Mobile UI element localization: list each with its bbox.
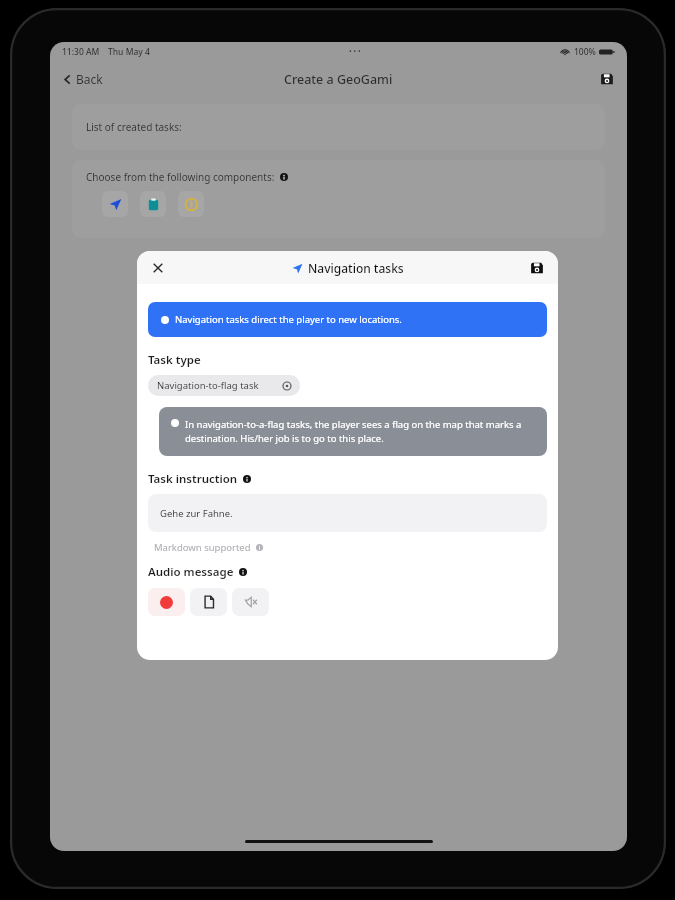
staticText: Choose from the following components: <box>86 170 275 184</box>
staticText: Back <box>76 71 103 87</box>
button[interactable]: Record <box>148 588 185 616</box>
staticText: Navigation-to-flag task <box>157 379 259 392</box>
button[interactable]: Navigation-to-flag task <box>148 375 300 396</box>
button[interactable]: Save <box>597 69 617 89</box>
staticText: 11:30 AM <box>62 46 100 58</box>
staticText: Navigation tasks direct the player to ne… <box>175 313 402 326</box>
button[interactable]: Play audio <box>232 588 269 616</box>
staticText: 100% <box>574 46 596 58</box>
staticText: Navigation tasks <box>308 260 404 276</box>
button[interactable]: Component <box>178 191 204 217</box>
button[interactable]: Choose file <box>190 588 227 616</box>
staticText: List of created tasks: <box>86 120 182 134</box>
staticText: Audio message <box>148 564 234 580</box>
button[interactable]: Gehe zur Fahne. <box>148 494 547 532</box>
staticText: Task instruction <box>148 471 238 487</box>
button[interactable]: Close <box>148 258 168 278</box>
button[interactable]: Component <box>102 191 128 217</box>
staticText: Gehe zur Fahne. <box>160 507 233 520</box>
staticText: Markdown supported <box>154 541 251 554</box>
staticText: Create a GeoGami <box>284 71 393 88</box>
button[interactable]: Back <box>58 68 107 90</box>
staticText: In navigation-to-a-flag tasks, the playe… <box>185 418 535 445</box>
staticText: Task type <box>148 352 201 368</box>
staticText: • • • <box>349 47 361 57</box>
button[interactable]: Component <box>140 191 166 217</box>
button[interactable]: Save task <box>527 258 547 278</box>
staticText: Thu May 4 <box>108 46 150 58</box>
